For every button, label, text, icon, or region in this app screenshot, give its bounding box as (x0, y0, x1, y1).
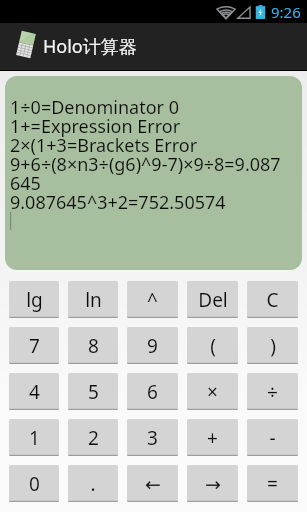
button[interactable]: 2 (68, 419, 118, 456)
button[interactable]: Del (187, 281, 238, 318)
staticText: 0 (29, 471, 40, 497)
staticText: - (269, 425, 276, 451)
button[interactable]: ÷ (247, 373, 298, 410)
button[interactable]: = (247, 465, 298, 502)
staticText: → (205, 473, 221, 495)
staticText: 6 (147, 379, 158, 405)
staticText: = (267, 471, 278, 497)
button[interactable]: ln (68, 281, 118, 318)
staticText: 7 (29, 333, 40, 359)
button[interactable]: 9 (127, 327, 178, 364)
button[interactable]: 7 (9, 327, 59, 364)
staticText: 4 (29, 379, 40, 405)
button[interactable]: lg (9, 281, 59, 318)
staticText: ln (85, 287, 102, 313)
button[interactable]: 5 (68, 373, 118, 410)
staticText: 3 (147, 425, 158, 451)
staticText: 1 (29, 425, 40, 451)
staticText: Del (198, 287, 228, 313)
staticText: 9 (147, 333, 158, 359)
staticText: ( (210, 333, 216, 359)
staticText: + (207, 425, 218, 451)
button[interactable]: ← (127, 465, 178, 502)
button[interactable]: → (187, 465, 238, 502)
staticText: lg (26, 287, 43, 313)
staticText: 8 (88, 333, 99, 359)
staticText: ÷ (267, 379, 278, 405)
staticText: ) (270, 333, 276, 359)
button[interactable]: ) (247, 327, 298, 364)
button[interactable]: - (247, 419, 298, 456)
button[interactable]: 0 (9, 465, 59, 502)
staticText: . (90, 471, 96, 497)
button[interactable]: + (187, 419, 238, 456)
button[interactable]: 6 (127, 373, 178, 410)
button[interactable]: ( (187, 327, 238, 364)
button[interactable]: ^ (127, 281, 178, 318)
staticText: 2 (88, 425, 99, 451)
button[interactable]: . (68, 465, 118, 502)
staticText: 1÷0=Denominator 0 1+=Expression Error 2×… (10, 95, 290, 233)
button[interactable]: 1 (9, 419, 59, 456)
staticText: C (266, 287, 279, 313)
button[interactable]: 4 (9, 373, 59, 410)
staticText: 9:26 (271, 2, 301, 22)
button[interactable]: 3 (127, 419, 178, 456)
staticText: Holo计算器 (43, 34, 137, 59)
staticText: 5 (88, 379, 99, 405)
staticText: ← (145, 473, 161, 495)
staticText: × (207, 379, 218, 405)
staticText: ^ (147, 287, 158, 313)
button[interactable]: C (247, 281, 298, 318)
button[interactable]: 8 (68, 327, 118, 364)
button[interactable]: × (187, 373, 238, 410)
